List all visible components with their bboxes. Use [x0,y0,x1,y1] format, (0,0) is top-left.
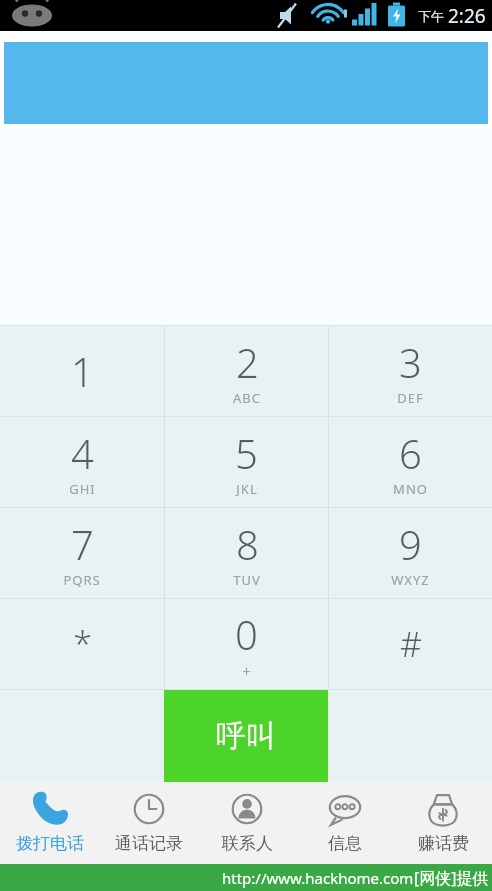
staticText: 赚话费 [418,833,469,854]
staticText: GHI [69,480,96,498]
staticText: DEF [397,389,424,407]
staticText: 0 [235,607,258,661]
staticText: 3 [399,335,422,389]
button[interactable]: # [329,599,492,689]
button[interactable]: 2 [165,326,328,416]
button[interactable]: 8 [165,508,328,598]
staticText: TUV [233,571,261,589]
staticText: 通话记录 [115,833,183,854]
button[interactable]: 联系人 [198,782,296,864]
staticText: WXYZ [391,571,430,589]
staticText: 4 [71,426,94,480]
button[interactable]: 1 [0,326,164,416]
button[interactable]: 拨打电话 [0,782,99,864]
button[interactable]: 5 [165,417,328,507]
staticText: + [242,661,252,681]
staticText: 5 [235,426,258,480]
button[interactable]: 通话记录 [99,782,198,864]
staticText: 2:26 [448,3,486,29]
staticText: [网侠]提供 [414,867,489,889]
staticText: JKL [236,480,258,498]
staticText: 9 [399,517,422,571]
button[interactable]: 0 [165,599,328,689]
staticText: 2 [236,335,259,389]
button[interactable]: 9 [329,508,492,598]
button[interactable]: 3 [329,326,492,416]
button[interactable]: 赚话费 [394,782,492,864]
staticText: # [400,621,422,667]
staticText: 1 [71,344,94,398]
button[interactable]: * [0,599,164,689]
staticText: http://www.hackhome.com [222,868,414,888]
button[interactable]: 信息 [296,782,394,864]
button[interactable]: 呼叫 [164,690,328,782]
staticText: 呼叫 [216,717,276,755]
staticText: 8 [236,517,259,571]
staticText: 6 [399,426,422,480]
staticText: 下午 [418,8,444,24]
staticText: 联系人 [222,833,273,854]
staticText: MNO [393,480,428,498]
staticText: * [73,621,92,667]
staticText: 拨打电话 [16,833,84,854]
button[interactable]: 7 [0,508,164,598]
button[interactable]: 6 [329,417,492,507]
staticText: 7 [71,517,94,571]
staticText: PQRS [63,571,101,589]
staticText: 信息 [328,833,362,854]
staticText: ABC [233,389,261,407]
button[interactable]: 4 [0,417,164,507]
